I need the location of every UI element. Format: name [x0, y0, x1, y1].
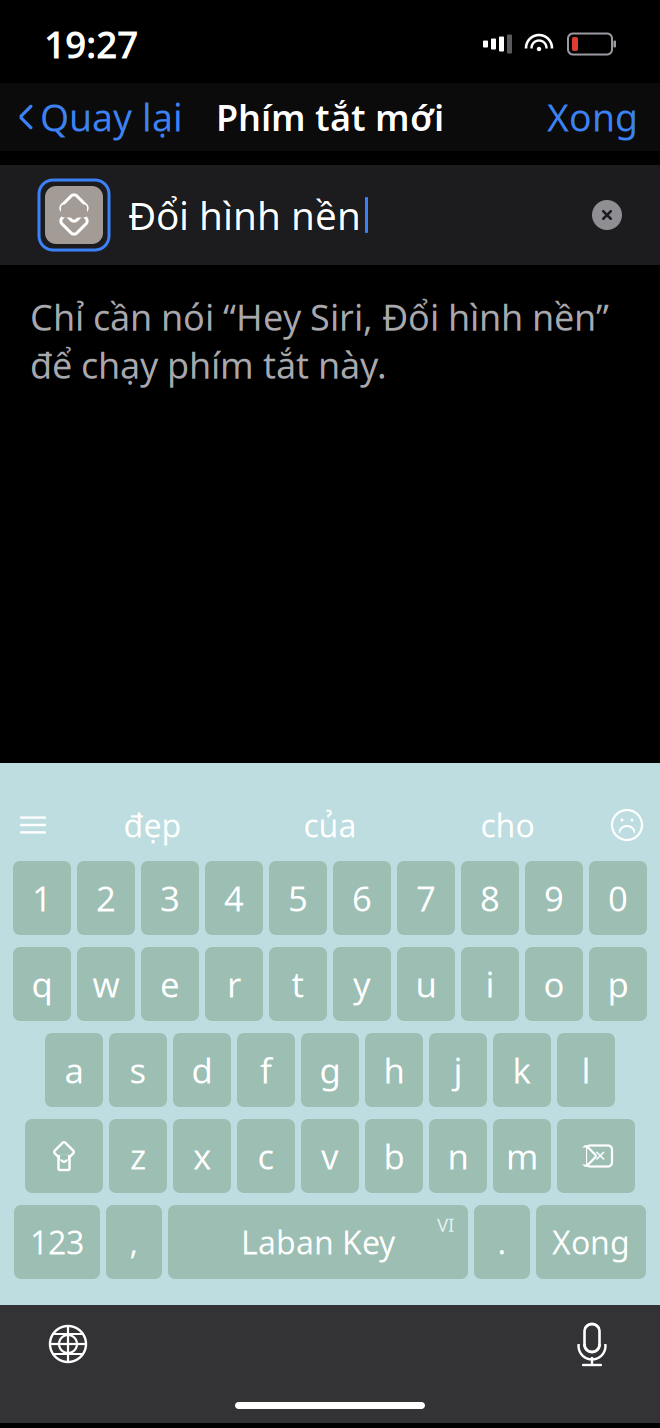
button[interactable]: i	[461, 947, 519, 1021]
button[interactable]: 8	[461, 861, 519, 935]
staticText: g	[319, 1047, 340, 1093]
button[interactable]: p	[589, 947, 647, 1021]
button[interactable]: k	[493, 1033, 551, 1107]
button[interactable]: m	[493, 1119, 551, 1193]
staticText: 9	[544, 875, 564, 921]
staticText: Quay lại	[40, 92, 183, 142]
staticText: 6	[352, 875, 372, 921]
staticText: q	[31, 961, 52, 1007]
staticText: f	[260, 1047, 272, 1093]
staticText: Chỉ cần nói “Hey Siri, Đổi hình nền” để …	[30, 293, 609, 389]
button[interactable]: f	[237, 1033, 295, 1107]
staticText: d	[191, 1047, 212, 1093]
button[interactable]: g	[301, 1033, 359, 1107]
staticText: 8	[480, 875, 500, 921]
button[interactable]: b	[365, 1119, 423, 1193]
button[interactable]: Đổi bàn phím	[0, 1322, 90, 1366]
button[interactable]: n	[429, 1119, 487, 1193]
button[interactable]: Biểu tượng cảm xúc	[610, 808, 660, 842]
button[interactable]: h	[365, 1033, 423, 1107]
button[interactable]: Quay lại	[0, 84, 201, 150]
button[interactable]: 5	[269, 861, 327, 935]
button[interactable]: v	[301, 1119, 359, 1193]
staticText: của	[303, 804, 356, 846]
button[interactable]: ,	[106, 1205, 162, 1279]
staticText: 3	[160, 875, 180, 921]
staticText: đẹp	[123, 804, 181, 846]
staticText: cho	[480, 804, 534, 846]
staticText: 7	[416, 875, 436, 921]
staticText: Đổi hình nền	[128, 189, 361, 241]
button[interactable]: Laban Key	[168, 1205, 468, 1279]
button[interactable]: 1	[13, 861, 71, 935]
button[interactable]: j	[429, 1033, 487, 1107]
button[interactable]: Đọc chính tả	[570, 1319, 660, 1369]
staticText: t	[291, 961, 304, 1007]
button[interactable]: 7	[397, 861, 455, 935]
button[interactable]: r	[205, 947, 263, 1021]
staticText: VI	[437, 1212, 454, 1237]
staticText: p	[607, 961, 628, 1007]
button[interactable]: Cài đặt bàn phím	[0, 808, 50, 842]
button[interactable]: e	[141, 947, 199, 1021]
staticText: Xong	[547, 92, 638, 142]
staticText: 1	[32, 875, 52, 921]
button[interactable]: u	[397, 947, 455, 1021]
button[interactable]: d	[173, 1033, 231, 1107]
button[interactable]: Xong	[536, 1205, 646, 1279]
button[interactable]: 9	[525, 861, 583, 935]
staticText: 4	[224, 875, 244, 921]
staticText: x	[193, 1133, 211, 1179]
staticText: b	[383, 1133, 404, 1179]
button[interactable]: Shift	[25, 1119, 103, 1193]
button[interactable]: q	[13, 947, 71, 1021]
button[interactable]: .	[474, 1205, 530, 1279]
staticText: v	[321, 1133, 339, 1179]
button[interactable]: của	[255, 799, 405, 851]
staticText: 0	[608, 875, 628, 921]
button[interactable]: 0	[589, 861, 647, 935]
staticText: s	[129, 1047, 146, 1093]
staticText: h	[383, 1047, 404, 1093]
staticText: a	[64, 1047, 83, 1093]
button[interactable]: t	[269, 947, 327, 1021]
staticText: Laban Key	[241, 1221, 395, 1263]
staticText: z	[130, 1133, 146, 1179]
staticText: r	[227, 961, 241, 1007]
button[interactable]: c	[237, 1119, 295, 1193]
button[interactable]: y	[333, 947, 391, 1021]
button[interactable]: a	[45, 1033, 103, 1107]
staticText: c	[257, 1133, 274, 1179]
button[interactable]: 3	[141, 861, 199, 935]
button[interactable]: 4	[205, 861, 263, 935]
staticText: l	[581, 1047, 590, 1093]
button[interactable]: đẹp	[77, 799, 227, 851]
staticText: e	[160, 961, 180, 1007]
button[interactable]: l	[557, 1033, 615, 1107]
button[interactable]: 6	[333, 861, 391, 935]
staticText: ,	[129, 1221, 138, 1263]
button[interactable]: 123	[14, 1205, 100, 1279]
staticText: 123	[30, 1221, 84, 1263]
staticText: m	[506, 1133, 538, 1179]
button[interactable]: z	[109, 1119, 167, 1193]
staticText: i	[485, 961, 494, 1007]
button[interactable]: 2	[77, 861, 135, 935]
button[interactable]: cho	[432, 799, 582, 851]
staticText: u	[415, 961, 436, 1007]
button[interactable]: Xoá	[557, 1119, 635, 1193]
staticText: 19:27	[44, 19, 138, 69]
staticText: k	[512, 1047, 531, 1093]
button[interactable]: o	[525, 947, 583, 1021]
staticText: 5	[288, 875, 308, 921]
staticText: .	[497, 1221, 506, 1263]
staticText: w	[92, 961, 119, 1007]
button[interactable]: w	[77, 947, 135, 1021]
button[interactable]: x	[173, 1119, 231, 1193]
button[interactable]: s	[109, 1033, 167, 1107]
staticText: n	[447, 1133, 468, 1179]
button[interactable]: Xong	[525, 84, 660, 150]
staticText: o	[543, 961, 564, 1007]
staticText: Phím tắt mới	[216, 93, 444, 141]
button[interactable]: Xoá văn bản	[590, 198, 660, 232]
